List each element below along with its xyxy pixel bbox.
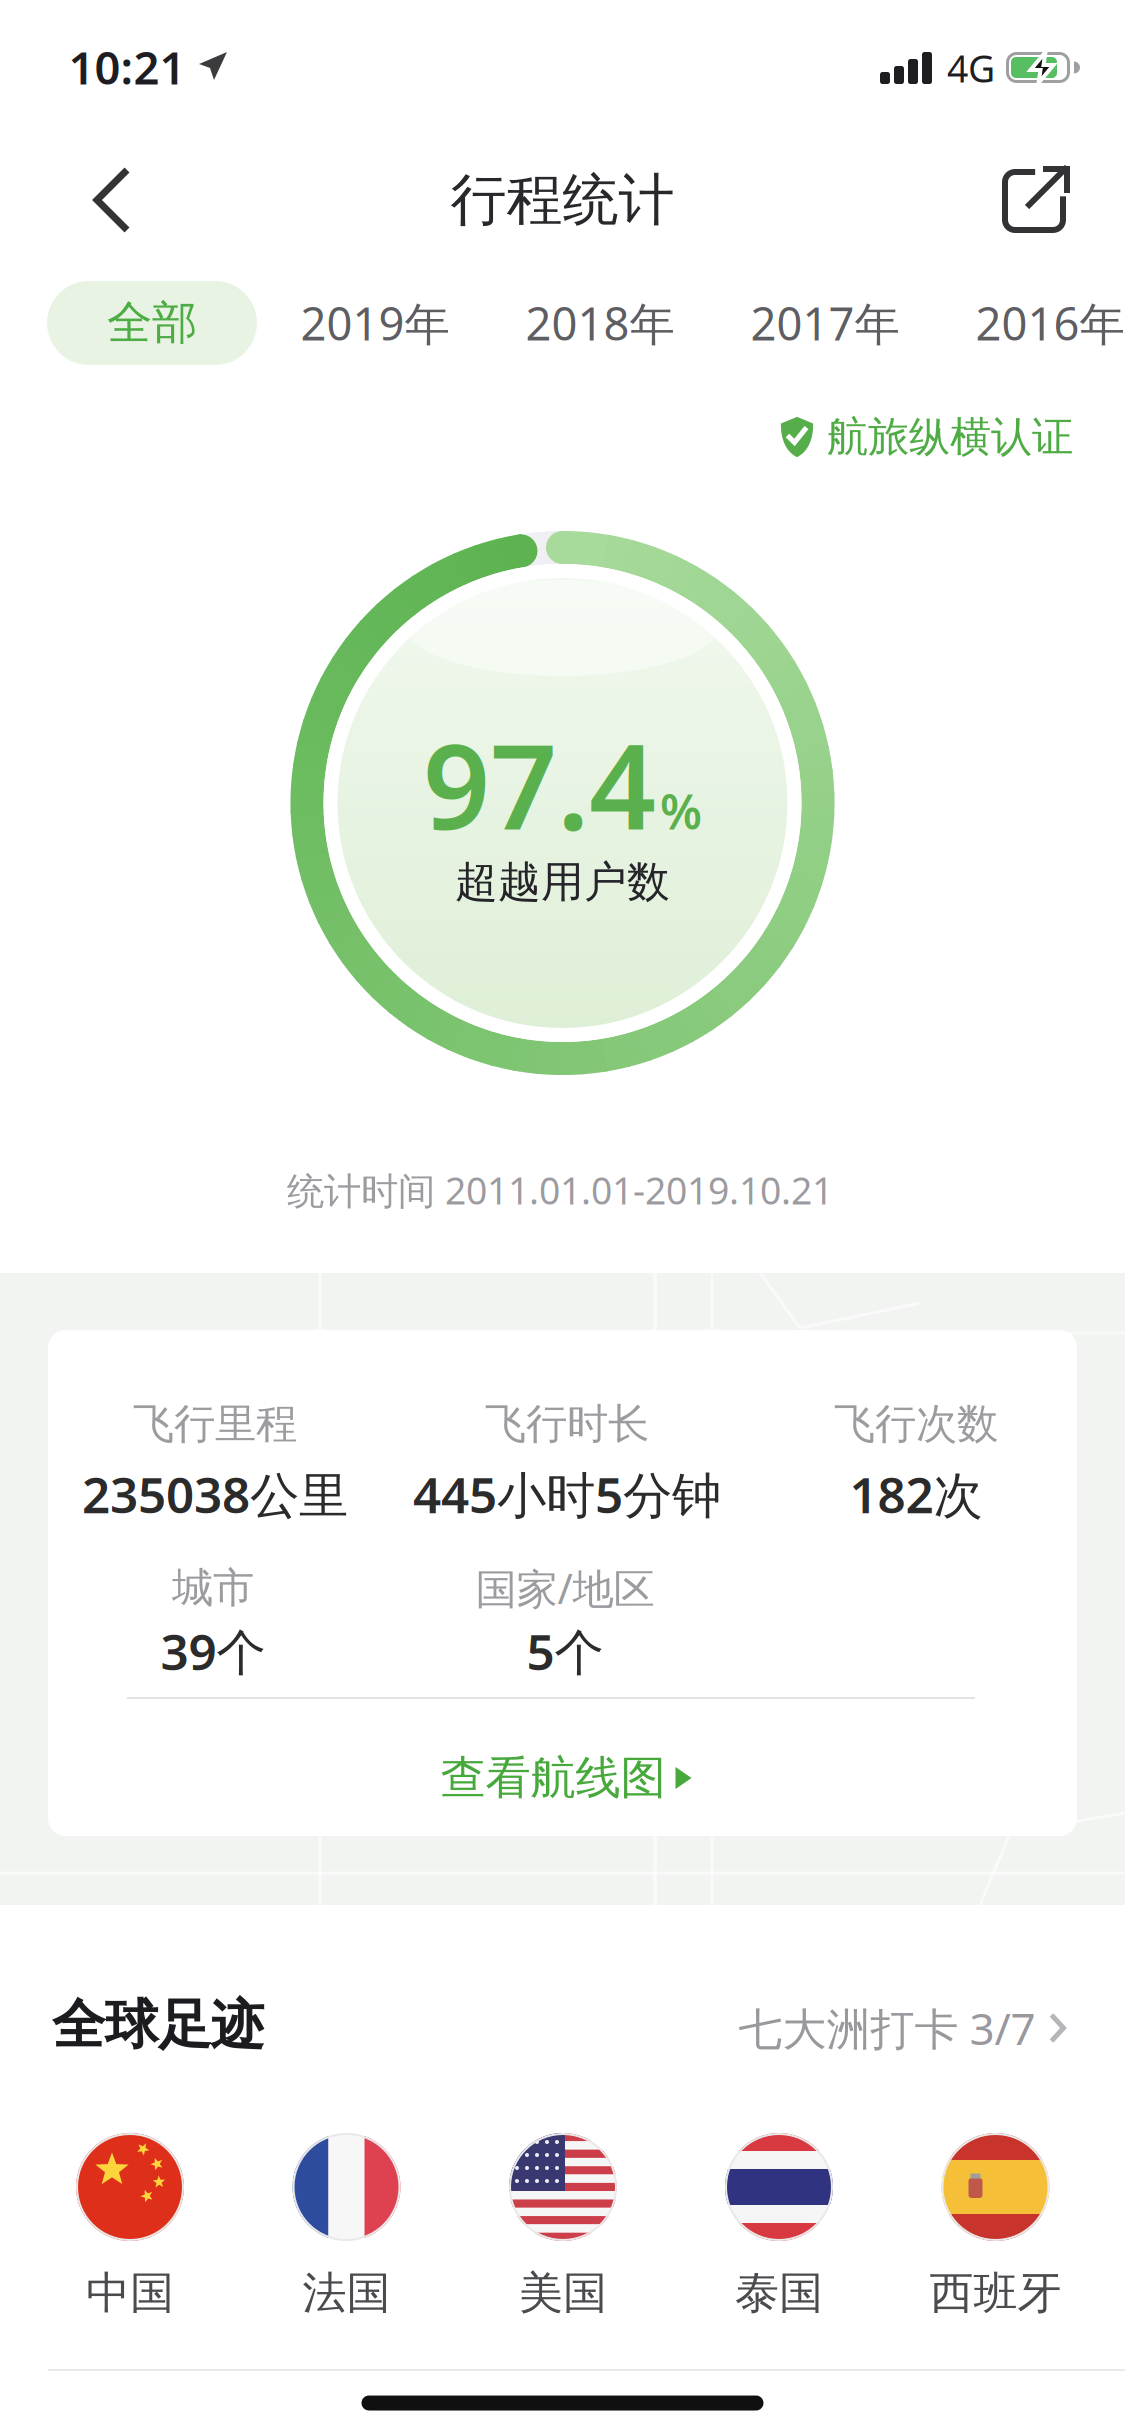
staticText: 5个 [526, 1618, 603, 1684]
staticText: 航旅纵横认证 [827, 412, 1073, 462]
staticText: 中国 [86, 2266, 174, 2320]
staticText: 国家/地区 [475, 1561, 654, 1615]
staticText: 97.4 [423, 706, 656, 862]
button[interactable]: 2017年 [740, 283, 909, 363]
staticText: 2019年 [300, 293, 449, 353]
staticText: 39个 [160, 1618, 265, 1684]
staticText: 七大洲打卡 3/7 [738, 1999, 1035, 2057]
staticText: 2018年 [525, 293, 674, 353]
staticText: 445小时5分钟 [413, 1461, 721, 1527]
button[interactable]: 全部 [47, 281, 257, 365]
button[interactable]: 2019年 [290, 283, 459, 363]
button[interactable]: 七大洲打卡 3/7 [728, 1989, 1075, 2067]
staticText: 飞行时长 [485, 1399, 649, 1449]
staticText: 2017年 [750, 293, 899, 353]
button[interactable]: 查看航线图 [426, 1736, 705, 1820]
staticText: 全球足迹 [52, 1992, 264, 2058]
button[interactable]: 返回 [75, 148, 159, 254]
staticText: 美国 [519, 2266, 607, 2320]
button[interactable]: 分享 [991, 151, 1085, 249]
staticText: 行程统计 [450, 166, 674, 234]
button[interactable]: 2018年 [515, 283, 684, 363]
staticText: 10:21 [68, 37, 185, 97]
staticText: 235038公里 [82, 1461, 348, 1527]
staticText: 法国 [302, 2266, 390, 2320]
button[interactable]: 2016年 [965, 283, 1125, 363]
staticText: 西班牙 [929, 2266, 1061, 2320]
staticText: 全部 [107, 295, 197, 351]
staticText: 统计时间 2011.01.01-2019.10.21 [287, 1165, 833, 1215]
staticText: 查看航线图 [440, 1750, 665, 1806]
staticText: 飞行次数 [834, 1399, 998, 1449]
staticText: 182次 [849, 1461, 982, 1527]
staticText: 飞行里程 [133, 1399, 297, 1449]
staticText: 泰国 [735, 2266, 823, 2320]
staticText: 超越用户数 [455, 856, 670, 908]
staticText: 2016年 [975, 293, 1124, 353]
staticText: % [660, 779, 702, 843]
staticText: 城市 [172, 1563, 254, 1613]
staticText: 4G [947, 43, 995, 93]
